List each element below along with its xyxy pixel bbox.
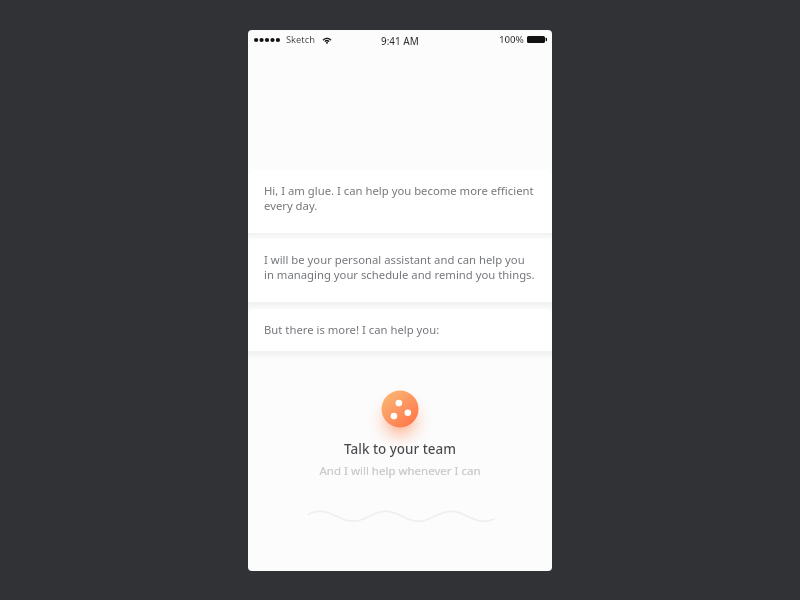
staticText: in managing your schedule and remind you… <box>264 267 535 282</box>
other: Wi-Fi <box>322 35 332 45</box>
staticText: Hi, I am glue. I can help you become mor… <box>264 183 534 198</box>
button[interactable]: But there is more! I can help you: <box>248 309 552 351</box>
staticText: 9:41 AM <box>381 34 419 47</box>
staticText: Sketch <box>286 33 315 46</box>
other: Battery full <box>527 36 547 43</box>
staticText: Talk to your team <box>248 440 552 458</box>
staticText: But there is more! I can help you: <box>264 322 440 337</box>
button[interactable]: I will be your personal assistant and ca… <box>248 239 552 302</box>
staticText: I will be your personal assistant and ca… <box>264 252 525 267</box>
button[interactable]: Talk to your team <box>364 373 436 445</box>
staticText: every day. <box>264 198 318 213</box>
staticText: 100% <box>499 33 524 46</box>
staticText: And I will help whenever I can <box>248 463 552 479</box>
button[interactable]: Hi, I am glue. I can help you become mor… <box>248 170 552 233</box>
